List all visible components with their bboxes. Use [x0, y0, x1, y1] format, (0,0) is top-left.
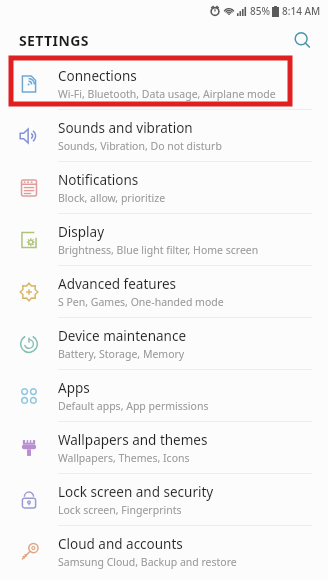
staticText: Lock screen and security — [58, 483, 214, 501]
staticText: Battery, Storage, Memory — [58, 347, 185, 361]
staticText: Block, allow, prioritize — [58, 191, 166, 205]
staticText: Default apps, App permissions — [58, 399, 209, 413]
button[interactable]: Advanced features — [0, 266, 328, 317]
staticText: Sounds and vibration — [58, 119, 193, 137]
staticText: Advanced features — [58, 275, 177, 293]
button[interactable]: Display — [0, 214, 328, 265]
staticText: Cloud and accounts — [58, 535, 183, 553]
staticText: 8:14 AM — [282, 4, 321, 18]
staticText: Brightness, Blue light filter, Home scre… — [58, 243, 259, 257]
staticText: Wi-Fi, Bluetooth, Data usage, Airplane m… — [58, 87, 276, 101]
button[interactable]: Apps — [0, 370, 328, 421]
staticText: SETTINGS — [19, 31, 89, 50]
button[interactable]: Notifications — [0, 162, 328, 213]
button[interactable]: Lock screen and security — [0, 474, 328, 525]
staticText: S Pen, Games, One-handed mode — [58, 295, 224, 309]
button[interactable]: Device maintenance — [0, 318, 328, 369]
staticText: Sounds, Vibration, Do not disturb — [58, 139, 222, 153]
staticText: Connections — [58, 67, 137, 85]
staticText: Device maintenance — [58, 327, 187, 345]
staticText: Notifications — [58, 171, 139, 189]
button[interactable]: Cloud and accounts — [0, 526, 328, 577]
staticText: Lock screen, Fingerprints — [58, 503, 182, 517]
staticText: Samsung Cloud, Backup and restore — [58, 555, 237, 569]
button[interactable]: Wallpapers and themes — [0, 422, 328, 473]
staticText: 85% — [250, 4, 270, 18]
staticText: Wallpapers, Themes, Icons — [58, 451, 190, 465]
button[interactable]: Search — [288, 26, 316, 54]
button[interactable]: Sounds and vibration — [0, 110, 328, 161]
staticText: Apps — [58, 379, 90, 397]
button[interactable]: Connections — [0, 58, 328, 109]
staticText: Wallpapers and themes — [58, 431, 208, 449]
staticText: Display — [58, 223, 105, 241]
